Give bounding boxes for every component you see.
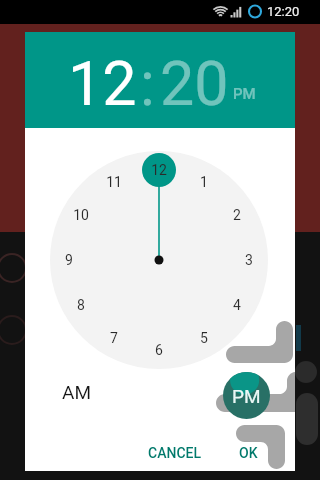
staticText: 9 — [65, 252, 73, 268]
button[interactable]: 11 — [100, 168, 128, 196]
button[interactable]: 8 — [67, 291, 95, 319]
button[interactable]: OK — [229, 436, 268, 470]
button[interactable]: 1 — [190, 168, 218, 196]
staticText: 11 — [106, 174, 122, 190]
staticText: 3 — [245, 252, 253, 268]
staticText: 8 — [77, 297, 85, 313]
button[interactable]: PM — [233, 85, 256, 103]
button[interactable]: 12 — [145, 156, 173, 184]
staticText: OK — [239, 445, 258, 461]
button[interactable]: 10 — [67, 201, 95, 229]
button[interactable]: 2 — [223, 201, 251, 229]
staticText: CANCEL — [148, 445, 202, 461]
staticText: 5 — [200, 330, 208, 346]
staticText: : — [140, 48, 155, 119]
button[interactable]: 9 — [55, 246, 83, 274]
button[interactable]: PM — [223, 372, 270, 419]
staticText: 10 — [73, 207, 89, 223]
button[interactable]: CANCEL — [138, 436, 212, 470]
staticText: 1 — [200, 174, 208, 190]
button[interactable]: 3 — [235, 246, 263, 274]
staticText: 7 — [110, 330, 118, 346]
staticText: 6 — [155, 342, 163, 358]
staticText: 2 — [233, 207, 241, 223]
button[interactable]: AM — [58, 377, 95, 407]
button[interactable]: 6 — [145, 336, 173, 364]
button[interactable]: 7 — [100, 324, 128, 352]
staticText: PM — [232, 385, 261, 407]
button[interactable]: 4 — [223, 291, 251, 319]
staticText: AM — [62, 381, 91, 403]
button[interactable]: 12 — [68, 48, 137, 119]
staticText: 4 — [233, 297, 241, 313]
button[interactable]: 20 — [160, 48, 229, 119]
button[interactable]: 5 — [190, 324, 218, 352]
staticText: 12 — [151, 162, 167, 178]
staticText: 12:20 — [267, 4, 300, 19]
